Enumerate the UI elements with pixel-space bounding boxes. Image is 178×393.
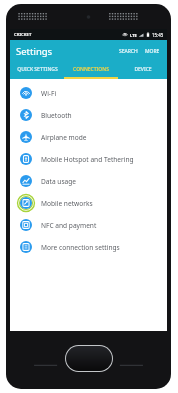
staticText: DEVICE xyxy=(134,66,152,73)
staticText: CRICKET xyxy=(14,32,32,38)
button[interactable]: Data usage xyxy=(10,170,167,192)
staticText: CONNECTIONS xyxy=(73,66,109,73)
staticText: More connection settings xyxy=(41,243,120,252)
button[interactable]: MORE xyxy=(143,46,162,57)
button[interactable]: NFC and payment xyxy=(10,214,167,236)
button[interactable]: Wi-Fi xyxy=(10,82,167,104)
staticText: MORE xyxy=(145,48,160,55)
button[interactable]: SEARCH xyxy=(117,46,140,57)
staticText: LTE xyxy=(130,33,137,38)
staticText: Airplane mode xyxy=(41,133,87,142)
staticText: 15:45 xyxy=(152,32,164,38)
button[interactable]: QUICK SETTINGS xyxy=(10,62,64,77)
button[interactable]: Mobile Hotspot and Tethering xyxy=(10,148,167,170)
button[interactable]: CONNECTIONS xyxy=(64,62,118,77)
staticText: Mobile Hotspot and Tethering xyxy=(41,155,134,164)
staticText: Data usage xyxy=(41,177,77,186)
staticText: QUICK SETTINGS xyxy=(17,66,58,73)
button[interactable]: DEVICE xyxy=(118,62,167,77)
staticText: SEARCH xyxy=(119,48,138,55)
button[interactable]: Home xyxy=(66,346,112,371)
staticText: Wi-Fi xyxy=(41,89,57,98)
button[interactable]: Mobile networks xyxy=(10,192,167,214)
button[interactable]: Airplane mode xyxy=(10,126,167,148)
button[interactable]: Bluetooth xyxy=(10,104,167,126)
staticText: Bluetooth xyxy=(41,111,72,120)
staticText: Settings xyxy=(16,45,53,58)
staticText: Mobile networks xyxy=(41,199,93,208)
staticText: NFC and payment xyxy=(41,221,97,230)
button[interactable]: More connection settings xyxy=(10,236,167,258)
